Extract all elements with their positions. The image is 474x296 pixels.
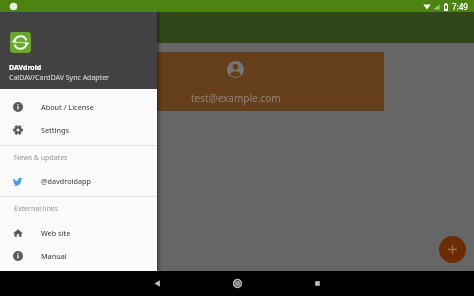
- button[interactable]: Back: [152, 278, 163, 289]
- staticText: Web site: [41, 228, 71, 238]
- button[interactable]: Settings: [0, 118, 157, 141]
- button[interactable]: Recent apps: [312, 278, 323, 289]
- button[interactable]: Manual: [0, 244, 157, 267]
- staticText: Manual: [41, 251, 67, 261]
- staticText: test@example.com: [191, 91, 281, 105]
- staticText: News & updates: [14, 153, 68, 163]
- button[interactable]: Add account: [439, 236, 466, 263]
- button[interactable]: About / License: [0, 95, 157, 118]
- button[interactable]: Web site: [0, 221, 157, 244]
- staticText: CalDAV/CardDAV Sync Adapter: [9, 73, 110, 83]
- button[interactable]: test@example.com: [87, 52, 384, 111]
- staticText: Settings: [41, 125, 69, 135]
- staticText: @davdroidapp: [41, 176, 91, 186]
- staticText: 7:49: [452, 1, 468, 12]
- button[interactable]: Home: [232, 278, 243, 289]
- staticText: External links: [14, 204, 58, 214]
- button[interactable]: @davdroidapp: [0, 169, 157, 192]
- staticText: DAVdroid: [9, 63, 42, 73]
- staticText: About / License: [41, 102, 94, 112]
